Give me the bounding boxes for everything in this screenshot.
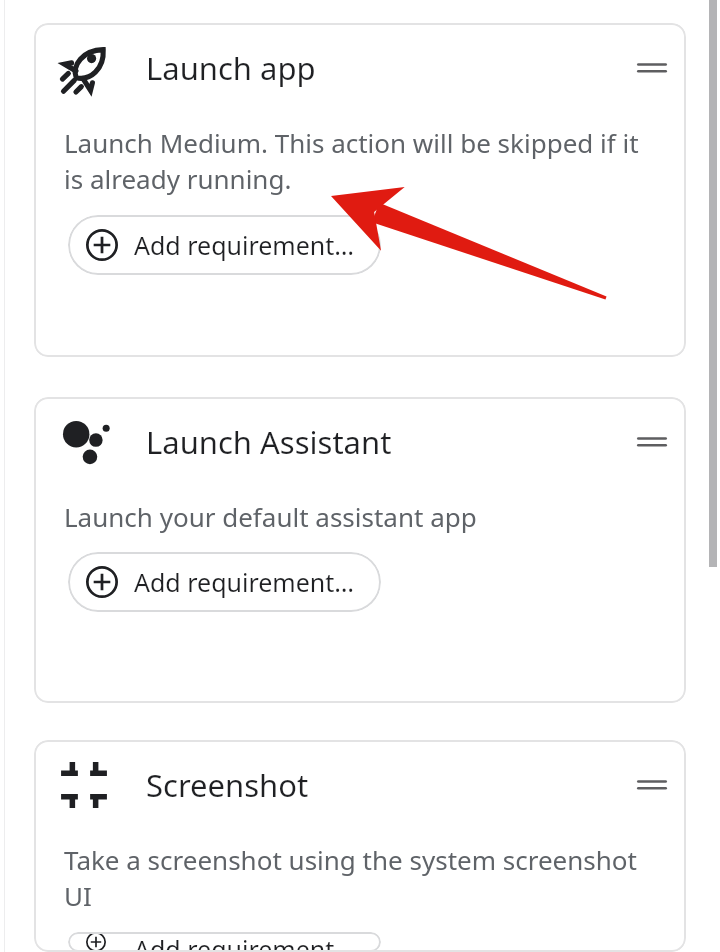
button[interactable]: Launch Assistant [34,397,686,703]
staticText: Launch app [146,47,630,89]
staticText: Add requirement… [134,932,355,952]
button[interactable]: Reorder [630,46,674,90]
staticText: Launch your default assistant app [64,499,477,534]
staticText: Add requirement… [134,228,355,262]
staticText: Launch Medium. This action will be skipp… [64,125,639,197]
staticText: Screenshot [146,764,630,806]
staticText: Launch Assistant [146,421,630,463]
button[interactable]: Add requirement… [68,932,381,952]
staticText: Add requirement… [134,565,355,599]
button[interactable]: Add requirement… [68,215,381,275]
button[interactable]: Reorder [630,420,674,464]
button[interactable]: Screenshot [34,740,686,952]
staticText: Take a screenshot using the system scree… [64,842,637,914]
button[interactable]: Add requirement… [68,552,381,612]
button[interactable]: Launch app [34,23,686,357]
button[interactable]: Reorder [630,763,674,807]
